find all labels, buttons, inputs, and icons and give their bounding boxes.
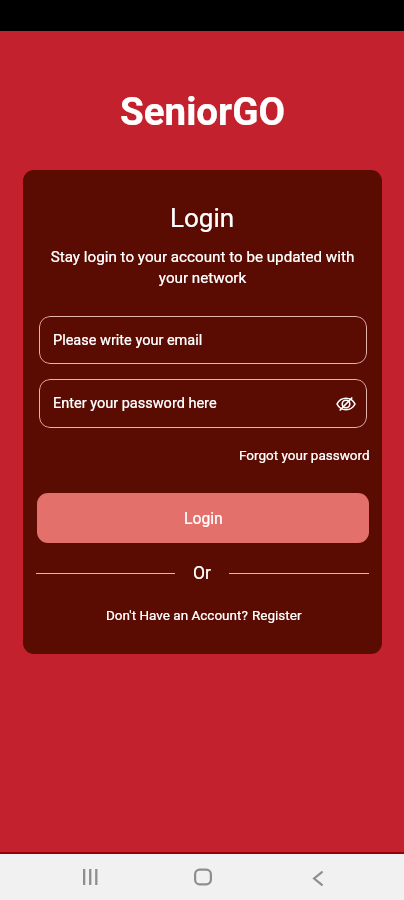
button[interactable]: Please write your email xyxy=(39,316,367,364)
staticText: Login xyxy=(184,509,223,527)
button[interactable]: Recents xyxy=(67,854,113,900)
button[interactable]: Register xyxy=(252,607,302,623)
staticText: Please write your email xyxy=(53,332,203,349)
button[interactable]: Login xyxy=(37,493,369,543)
button[interactable]: Show password xyxy=(335,393,357,415)
staticText: Stay login to your account to be updated… xyxy=(43,248,362,286)
button[interactable]: Back xyxy=(295,855,341,900)
staticText: Login xyxy=(170,203,235,233)
button[interactable]: Home xyxy=(180,854,226,900)
staticText: Enter your password here xyxy=(53,395,217,412)
staticText: Or xyxy=(193,563,211,584)
staticText: Don't Have an Account? xyxy=(106,607,252,623)
button[interactable]: Don't Have an Account? xyxy=(25,607,382,623)
staticText: SeniorGO xyxy=(120,89,285,134)
button[interactable]: Forgot your password xyxy=(239,447,370,463)
button[interactable]: Enter your password here xyxy=(39,379,367,428)
